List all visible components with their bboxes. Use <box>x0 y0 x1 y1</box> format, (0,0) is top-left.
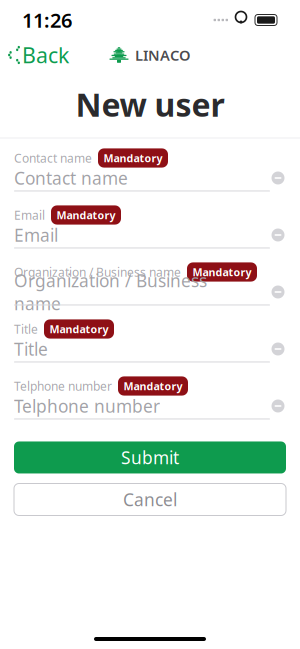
staticText: Mandatory <box>123 379 182 393</box>
button[interactable]: Back <box>0 35 77 75</box>
button[interactable]: Submit <box>14 441 286 473</box>
staticText: Telphone number <box>14 394 160 417</box>
staticText: New user <box>75 83 224 125</box>
staticText: Email <box>14 223 58 246</box>
staticText: Mandatory <box>103 151 162 165</box>
staticText: LINACO <box>135 45 191 65</box>
button[interactable]: Clear Contact name <box>262 166 286 190</box>
staticText: Organization / Business name <box>14 269 207 315</box>
staticText: Contact name <box>14 166 128 189</box>
staticText: Cancel <box>123 488 177 511</box>
staticText: Title <box>14 321 38 337</box>
button[interactable]: Clear Title <box>262 337 286 361</box>
button[interactable]: Clear Telphone number <box>262 394 286 418</box>
staticText: Email <box>14 207 45 223</box>
staticText: Contact name <box>14 150 92 166</box>
staticText: Back <box>22 41 69 69</box>
staticText: Mandatory <box>49 322 108 336</box>
staticText: Telphone number <box>14 378 112 394</box>
button[interactable]: Clear Organization / Business name <box>262 280 286 304</box>
staticText: Mandatory <box>56 208 115 222</box>
button[interactable]: Clear Email <box>262 223 286 247</box>
staticText: Submit <box>121 446 179 469</box>
staticText: Mandatory <box>192 265 251 279</box>
staticText: Organization / Business name <box>14 264 181 280</box>
staticText: 11:26 <box>22 7 72 33</box>
staticText: Title <box>14 337 48 360</box>
button[interactable]: Cancel <box>14 483 286 515</box>
